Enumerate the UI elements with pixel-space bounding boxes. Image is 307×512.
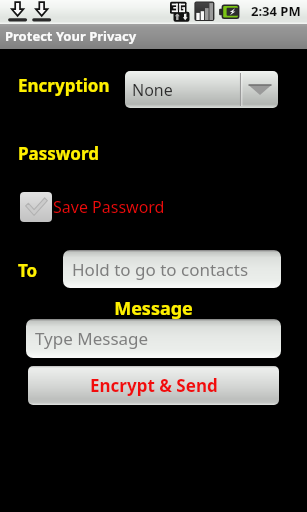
- staticText: Type Message: [35, 327, 149, 350]
- staticText: 2:34 PM: [251, 2, 301, 20]
- staticText: Protect Your Privacy: [5, 27, 137, 45]
- staticText: Encrypt & Send: [90, 374, 218, 397]
- button[interactable]: Type Message: [26, 319, 281, 358]
- button[interactable]: Encrypt & Send: [28, 366, 279, 405]
- staticText: Password: [18, 142, 99, 165]
- button[interactable]: Save Password: [20, 192, 165, 222]
- staticText: Save Password: [53, 196, 165, 218]
- button[interactable]: None: [125, 71, 278, 108]
- staticText: To: [18, 259, 38, 282]
- staticText: None: [132, 79, 173, 101]
- button[interactable]: Hold to go to contacts: [63, 250, 281, 288]
- staticText: Encryption: [18, 74, 110, 97]
- staticText: Hold to go to contacts: [72, 258, 249, 281]
- staticText: Message: [0, 296, 307, 321]
